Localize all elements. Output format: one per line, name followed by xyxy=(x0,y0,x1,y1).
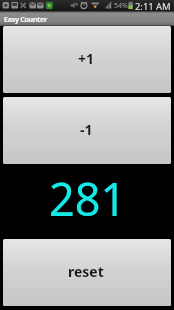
staticText: +1 xyxy=(78,49,95,68)
staticText: 281 xyxy=(49,168,127,229)
staticText: Easy Counter xyxy=(4,14,47,24)
button[interactable]: +1 xyxy=(3,26,171,93)
staticText: 54% xyxy=(114,1,128,11)
staticText: reset xyxy=(68,262,104,281)
button[interactable]: -1 xyxy=(3,97,171,164)
staticText: -1 xyxy=(80,120,93,139)
other: Status icons xyxy=(0,0,174,11)
staticText: 2:11 AM xyxy=(135,0,171,11)
button[interactable]: reset xyxy=(3,239,171,306)
